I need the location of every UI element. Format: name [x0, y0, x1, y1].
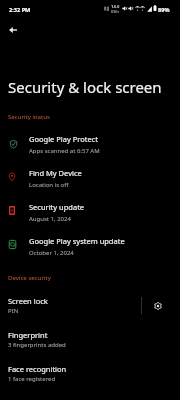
staticText: August 1, 2024	[29, 215, 71, 223]
staticText: Device security	[8, 273, 51, 281]
button[interactable]: Google Play system update	[0, 233, 180, 267]
staticText: 14.0	[111, 4, 120, 10]
staticText: 2:32 PM	[9, 6, 31, 14]
button[interactable]: Back	[2, 19, 23, 40]
staticText: 3 fingerprints added	[8, 341, 66, 349]
button[interactable]: Screen lock settings	[142, 293, 180, 327]
staticText: Location is off	[29, 181, 69, 189]
button[interactable]: Screen lock	[0, 293, 141, 327]
staticText: Security update	[29, 202, 85, 212]
staticText: Screen lock	[8, 296, 48, 306]
staticText: Google Play Protect	[29, 134, 98, 144]
staticText: KB/s	[111, 9, 120, 14]
button[interactable]: Find My Device	[0, 165, 180, 199]
staticText: Find My Device	[29, 168, 82, 178]
button[interactable]: Security update	[0, 199, 180, 233]
button[interactable]: Fingerprint	[0, 327, 180, 361]
staticText: 1 face registered	[8, 375, 56, 383]
button[interactable]: Google Play Protect	[0, 131, 180, 165]
staticText: Apps scanned at 6:57 AM	[29, 147, 100, 155]
staticText: 89%	[158, 6, 170, 14]
staticText: Face recognition	[8, 364, 67, 374]
button[interactable]: Face recognition	[0, 361, 180, 395]
staticText: October 1, 2024	[29, 249, 74, 257]
staticText: Fingerprint	[8, 330, 48, 340]
staticText: Google Play system update	[29, 236, 125, 246]
staticText: PIN	[8, 307, 19, 315]
staticText: Security & lock screen	[8, 77, 162, 97]
staticText: Security status	[8, 112, 50, 120]
